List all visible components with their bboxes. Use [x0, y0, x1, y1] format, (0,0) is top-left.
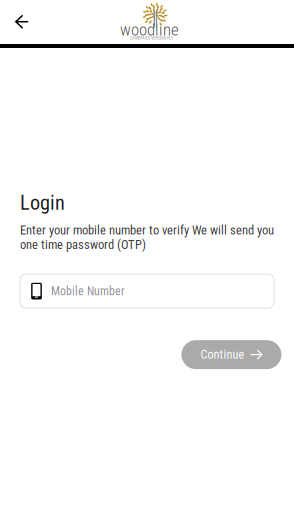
staticText: Continue: [200, 347, 244, 362]
button[interactable]: Back: [0, 0, 44, 44]
staticText: Login: [20, 191, 65, 215]
staticText: Mobile Number: [51, 284, 125, 298]
staticText: LAMINATES VENEERS PLY: [130, 35, 173, 41]
staticText: woodline: [120, 20, 179, 39]
button[interactable]: Continue: [174, 340, 274, 369]
staticText: Enter your mobile number to verify We wi…: [20, 223, 274, 252]
